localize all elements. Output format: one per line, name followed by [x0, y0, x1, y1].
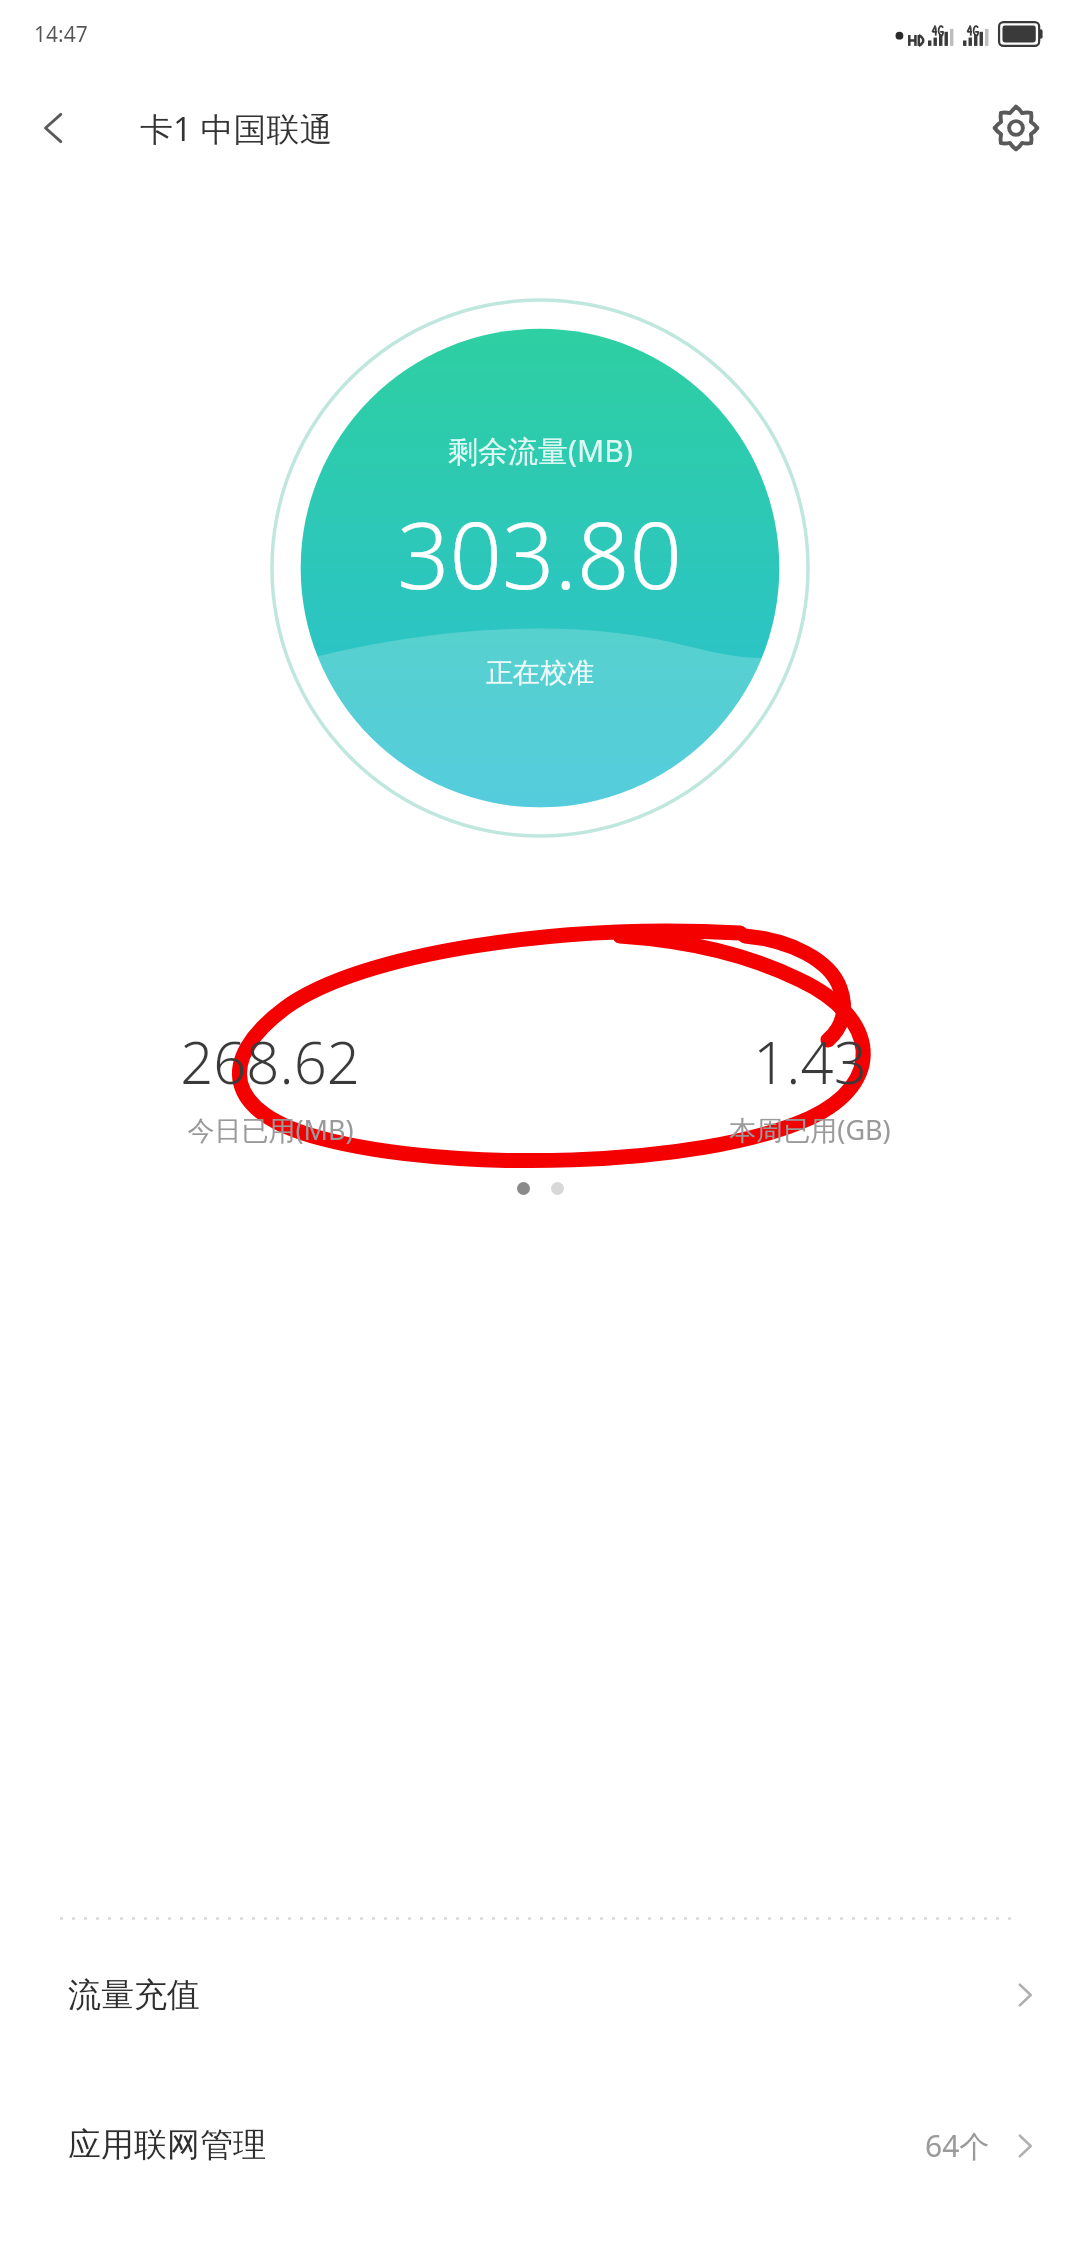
staticText: 应用联网管理	[68, 2124, 266, 2166]
button[interactable]: Back	[16, 90, 92, 166]
staticText: 正在校准	[486, 656, 594, 690]
button[interactable]: 应用联网管理	[0, 2070, 1080, 2220]
button[interactable]: 268.62	[0, 1018, 540, 1152]
button[interactable]: Settings	[978, 90, 1054, 166]
button[interactable]: 流量充值	[0, 1920, 1080, 2070]
staticText: 303.80	[397, 491, 683, 616]
staticText: 卡1 中国联通	[140, 106, 333, 151]
staticText: 流量充值	[68, 1974, 200, 2016]
staticText: 268.62	[180, 1022, 360, 1101]
staticText: 本周已用(GB)	[729, 1111, 891, 1148]
staticText: 1.43	[753, 1022, 867, 1101]
staticText: 64个	[925, 2125, 990, 2166]
staticText: 14:47	[34, 20, 88, 49]
button[interactable]: 1.43	[540, 1018, 1080, 1152]
staticText: 今日已用(MB)	[187, 1111, 354, 1148]
staticText: 剩余流量(MB)	[448, 430, 633, 471]
